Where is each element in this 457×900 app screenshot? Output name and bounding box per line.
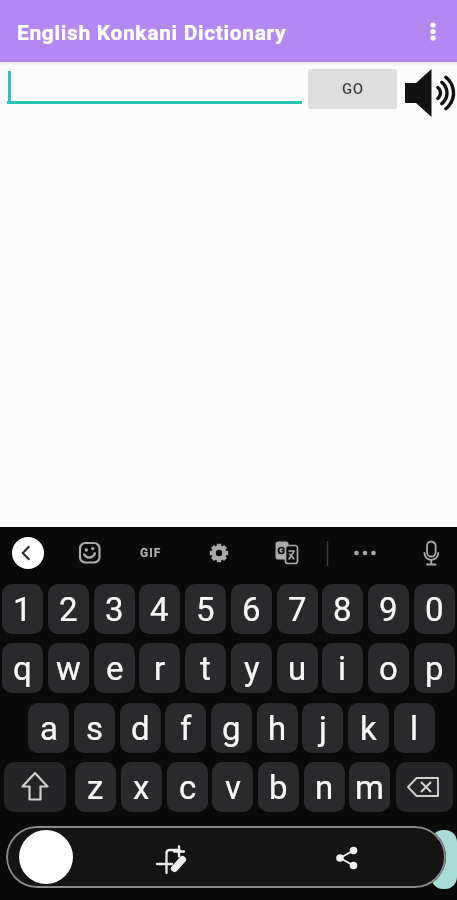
button[interactable] bbox=[12, 537, 44, 569]
button[interactable]: h bbox=[257, 703, 298, 753]
button[interactable]: 3 bbox=[94, 584, 135, 634]
staticText: i bbox=[338, 649, 347, 688]
staticText: 9 bbox=[379, 590, 398, 629]
button[interactable]: j bbox=[302, 703, 343, 753]
button[interactable]: q bbox=[2, 643, 43, 693]
staticText: g bbox=[222, 709, 241, 748]
staticText: 4 bbox=[150, 590, 169, 629]
button[interactable]: k bbox=[348, 703, 389, 753]
button[interactable]: u bbox=[277, 643, 318, 693]
staticText: e bbox=[106, 649, 124, 688]
staticText: 3 bbox=[105, 590, 124, 629]
button[interactable]: s bbox=[74, 703, 115, 753]
staticText: l bbox=[410, 709, 419, 748]
staticText: q bbox=[13, 649, 32, 688]
staticText: t bbox=[200, 649, 211, 688]
staticText: z bbox=[87, 768, 104, 807]
button[interactable]: 8 bbox=[322, 584, 363, 634]
button[interactable]: GO bbox=[308, 69, 397, 109]
staticText: p bbox=[425, 649, 444, 688]
staticText: s bbox=[86, 709, 104, 748]
button[interactable]: 5 bbox=[185, 584, 226, 634]
button[interactable]: b bbox=[258, 762, 299, 812]
staticText: 2 bbox=[59, 590, 78, 629]
staticText: u bbox=[288, 649, 307, 688]
button[interactable] bbox=[203, 537, 235, 569]
button[interactable]: c bbox=[167, 762, 208, 812]
staticText: w bbox=[56, 649, 81, 688]
button[interactable] bbox=[400, 66, 454, 114]
staticText: x bbox=[133, 768, 150, 807]
staticText: 0 bbox=[425, 590, 444, 629]
button[interactable] bbox=[269, 537, 301, 569]
staticText: a bbox=[40, 709, 58, 748]
button[interactable] bbox=[158, 842, 190, 874]
button[interactable]: 0 bbox=[414, 584, 455, 634]
button[interactable] bbox=[331, 842, 363, 874]
staticText: n bbox=[315, 768, 334, 807]
button[interactable]: o bbox=[368, 643, 409, 693]
button[interactable]: i bbox=[322, 643, 363, 693]
button[interactable]: e bbox=[94, 643, 135, 693]
staticText: r bbox=[154, 649, 166, 688]
button[interactable]: r bbox=[139, 643, 180, 693]
staticText: k bbox=[360, 709, 377, 748]
staticText: v bbox=[225, 768, 241, 807]
staticText: o bbox=[379, 649, 398, 688]
staticText: GIF bbox=[140, 546, 162, 560]
staticText: j bbox=[319, 709, 327, 748]
button[interactable]: z bbox=[75, 762, 116, 812]
button[interactable] bbox=[4, 762, 66, 812]
button[interactable] bbox=[72, 537, 104, 569]
staticText: English Konkani Dictionary bbox=[17, 21, 287, 46]
button[interactable] bbox=[418, 14, 450, 50]
button[interactable]: g bbox=[211, 703, 252, 753]
button[interactable]: x bbox=[121, 762, 162, 812]
staticText: f bbox=[180, 709, 192, 748]
button[interactable]: w bbox=[48, 643, 89, 693]
button[interactable] bbox=[136, 537, 168, 569]
staticText: h bbox=[268, 709, 287, 748]
button[interactable] bbox=[415, 537, 447, 569]
button[interactable]: l bbox=[394, 703, 435, 753]
staticText: c bbox=[179, 768, 197, 807]
staticText: 5 bbox=[196, 590, 215, 629]
button[interactable]: a bbox=[28, 703, 69, 753]
staticText: b bbox=[269, 768, 288, 807]
staticText: d bbox=[131, 709, 150, 748]
staticText: 8 bbox=[333, 590, 352, 629]
button[interactable]: 2 bbox=[48, 584, 89, 634]
staticText: 7 bbox=[288, 590, 307, 629]
button[interactable]: p bbox=[414, 643, 455, 693]
button[interactable]: v bbox=[212, 762, 253, 812]
button[interactable]: 7 bbox=[277, 584, 318, 634]
button[interactable]: 9 bbox=[368, 584, 409, 634]
staticText: GO bbox=[342, 80, 364, 98]
staticText: y bbox=[244, 649, 260, 688]
button[interactable]: 1 bbox=[2, 584, 43, 634]
button[interactable]: d bbox=[120, 703, 161, 753]
button[interactable]: m bbox=[349, 762, 390, 812]
button[interactable]: y bbox=[231, 643, 272, 693]
staticText: 6 bbox=[242, 590, 261, 629]
button[interactable] bbox=[19, 830, 73, 884]
staticText: 1 bbox=[13, 590, 32, 629]
button[interactable]: t bbox=[185, 643, 226, 693]
button[interactable]: f bbox=[165, 703, 206, 753]
button[interactable] bbox=[396, 762, 453, 812]
button[interactable] bbox=[349, 537, 381, 569]
button[interactable]: 6 bbox=[231, 584, 272, 634]
staticText: m bbox=[355, 768, 384, 807]
button[interactable]: n bbox=[304, 762, 345, 812]
button[interactable]: 4 bbox=[139, 584, 180, 634]
